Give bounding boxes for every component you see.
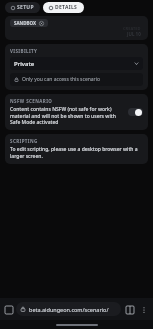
- button[interactable]: Private: [10, 57, 143, 70]
- button[interactable]: SETUP: [5, 2, 40, 13]
- button[interactable]: Tabs: [3, 304, 14, 315]
- button[interactable]: NSFW scenario toggle: [128, 108, 143, 116]
- staticText: SETUP: [17, 4, 34, 11]
- button[interactable]: Remove SANDBOX tag: [39, 21, 44, 26]
- staticText: DETAILS: [55, 4, 78, 11]
- staticText: SANDBOX: [14, 20, 37, 26]
- staticText: JUL 10: [127, 31, 141, 37]
- button[interactable]: More options: [137, 303, 150, 316]
- staticText: NSFW SCENARIO: [10, 98, 53, 104]
- staticText: Content contains NSFW (not safe for work…: [10, 106, 124, 126]
- button[interactable]: beta.aidungeon.com/scenario/Ocizn4x4g: [16, 302, 121, 316]
- staticText: Private: [14, 60, 35, 68]
- staticText: VISIBILITY: [10, 48, 38, 54]
- button[interactable]: DETAILS: [43, 2, 84, 13]
- staticText: SCRIPTING: [10, 138, 38, 144]
- staticText: Only you can access this scenario: [22, 76, 100, 83]
- staticText: To edit scripting, please use a desktop …: [10, 146, 143, 160]
- staticText: beta.aidungeon.com/scenario/Ocizn4x4g: [29, 306, 117, 313]
- button[interactable]: Bookmarks: [123, 303, 136, 316]
- button[interactable]: SANDBOX: [10, 19, 48, 27]
- staticText: CREATED: [123, 26, 141, 31]
